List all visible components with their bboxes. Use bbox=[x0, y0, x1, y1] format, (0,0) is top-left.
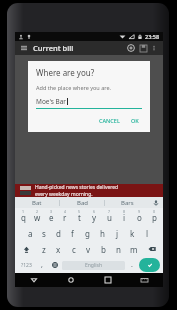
staticText: m bbox=[130, 244, 138, 255]
staticText: w bbox=[34, 212, 41, 223]
button[interactable]: Recent apps bbox=[89, 273, 126, 287]
staticText: q bbox=[21, 212, 26, 223]
button[interactable]: j bbox=[110, 225, 125, 241]
staticText: g bbox=[85, 228, 90, 239]
staticText: , bbox=[41, 260, 43, 270]
staticText: Bars bbox=[121, 199, 134, 207]
staticText: b bbox=[101, 244, 106, 255]
staticText: CANCEL bbox=[99, 117, 120, 124]
staticText: 2 bbox=[36, 209, 39, 214]
staticText: v bbox=[86, 244, 91, 255]
button[interactable]: m bbox=[126, 241, 141, 257]
button[interactable]: English bbox=[62, 261, 125, 270]
staticText: x bbox=[56, 244, 61, 255]
button[interactable]: Bars bbox=[105, 197, 149, 208]
staticText: r bbox=[63, 212, 67, 223]
staticText: a bbox=[28, 228, 33, 239]
button[interactable]: 6 bbox=[87, 208, 102, 225]
button[interactable]: g bbox=[80, 225, 95, 241]
staticText: OK bbox=[131, 117, 139, 124]
staticText: Hand-picked news stories delivered bbox=[35, 184, 119, 191]
button[interactable]: More options bbox=[149, 43, 159, 53]
staticText: 6 bbox=[93, 209, 96, 214]
button[interactable]: Save bill bbox=[137, 42, 149, 54]
staticText: f bbox=[71, 228, 74, 239]
button[interactable]: Hide keyboard bbox=[126, 273, 163, 287]
button[interactable]: c bbox=[66, 241, 81, 257]
staticText: Bad bbox=[77, 199, 88, 207]
staticText: English bbox=[85, 262, 103, 269]
staticText: 5 bbox=[78, 209, 81, 214]
staticText: 4 bbox=[64, 209, 67, 214]
button[interactable]: s bbox=[37, 225, 51, 241]
button[interactable]: Bat bbox=[15, 197, 59, 208]
button[interactable]: Open navigation drawer bbox=[19, 43, 29, 53]
button[interactable]: v bbox=[81, 241, 96, 257]
button[interactable]: z bbox=[36, 241, 51, 257]
button[interactable]: 0 bbox=[147, 208, 162, 225]
button[interactable]: ?123 bbox=[17, 257, 35, 273]
staticText: k bbox=[130, 228, 135, 239]
button[interactable]: 2 bbox=[30, 208, 44, 225]
staticText: Current bill bbox=[33, 43, 74, 53]
staticText: . bbox=[131, 260, 133, 270]
staticText: Add the place where you are. bbox=[36, 84, 111, 91]
button[interactable]: . bbox=[125, 257, 138, 273]
button[interactable]: Voice input bbox=[149, 197, 163, 208]
button[interactable]: 8 bbox=[117, 208, 132, 225]
button[interactable]: f bbox=[65, 225, 80, 241]
button[interactable]: a bbox=[23, 225, 37, 241]
staticText: c bbox=[72, 244, 76, 255]
button[interactable]: 3 bbox=[44, 208, 58, 225]
staticText: Moe's Bar bbox=[36, 97, 67, 106]
button[interactable]: OK bbox=[128, 115, 142, 126]
staticText: 0 bbox=[153, 209, 156, 214]
button[interactable]: 7 bbox=[102, 208, 117, 225]
button[interactable]: x bbox=[51, 241, 66, 257]
button[interactable]: Bad bbox=[60, 197, 104, 208]
staticText: z bbox=[42, 244, 46, 255]
button[interactable]: n bbox=[111, 241, 126, 257]
staticText: 3 bbox=[50, 209, 53, 214]
staticText: 9 bbox=[138, 209, 141, 214]
staticText: e bbox=[49, 212, 54, 223]
button[interactable]: b bbox=[96, 241, 111, 257]
staticText: Bat bbox=[32, 199, 42, 207]
button[interactable]: , bbox=[35, 257, 48, 273]
button[interactable]: Change keyboard language bbox=[48, 257, 62, 273]
button[interactable]: Shift bbox=[16, 241, 36, 257]
button[interactable]: Back bbox=[15, 273, 52, 287]
staticText: 8 bbox=[123, 209, 126, 214]
staticText: i bbox=[123, 212, 126, 223]
button[interactable]: Enter bbox=[139, 258, 160, 272]
button[interactable]: l bbox=[140, 225, 155, 241]
staticText: 1 bbox=[22, 209, 25, 214]
button[interactable]: 9 bbox=[132, 208, 147, 225]
button[interactable]: 5 bbox=[72, 208, 87, 225]
staticText: o bbox=[137, 212, 142, 223]
staticText: Where are you? bbox=[36, 67, 95, 78]
staticText: y bbox=[92, 212, 97, 223]
staticText: every weekday morning. bbox=[35, 191, 93, 197]
staticText: d bbox=[56, 228, 61, 239]
staticText: 23:58 bbox=[145, 33, 160, 40]
button[interactable]: CANCEL bbox=[96, 115, 123, 126]
button[interactable]: d bbox=[51, 225, 65, 241]
button[interactable]: Delete bbox=[141, 241, 162, 257]
button[interactable]: Home bbox=[52, 273, 89, 287]
button[interactable]: Hand-picked news stories delivered bbox=[15, 184, 163, 197]
staticText: p bbox=[152, 212, 157, 223]
button[interactable]: h bbox=[95, 225, 110, 241]
button[interactable]: 4 bbox=[58, 208, 72, 225]
staticText: ?123 bbox=[21, 262, 32, 269]
staticText: l bbox=[146, 228, 149, 239]
staticText: t bbox=[78, 212, 81, 223]
button[interactable]: Add item bbox=[125, 42, 137, 54]
staticText: j bbox=[116, 228, 119, 239]
staticText: s bbox=[42, 228, 46, 239]
staticText: u bbox=[107, 212, 112, 223]
staticText: n bbox=[116, 244, 121, 255]
button[interactable]: k bbox=[125, 225, 140, 241]
button[interactable]: 1 bbox=[16, 208, 30, 225]
staticText: 7 bbox=[108, 209, 111, 214]
